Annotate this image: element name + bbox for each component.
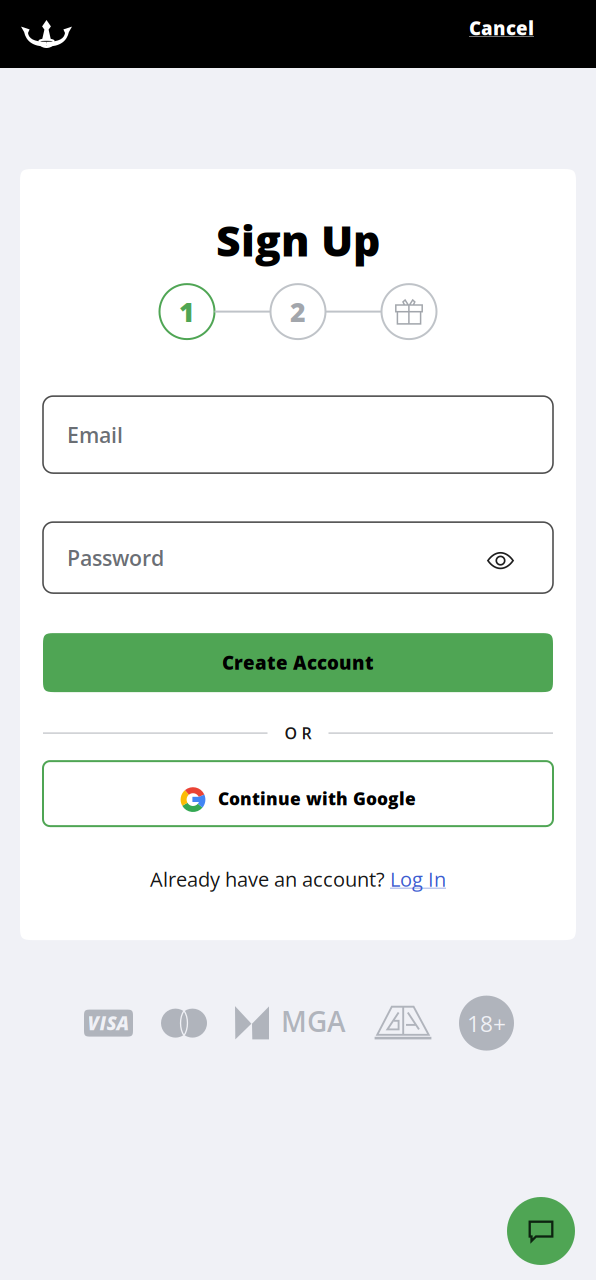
staticText: Sign Up <box>216 211 380 269</box>
button[interactable]: Create Account <box>43 633 553 692</box>
staticText: Log In <box>390 865 446 893</box>
button[interactable]: Password <box>43 522 553 593</box>
staticText: Create Account <box>222 650 374 675</box>
staticText: Password <box>67 543 164 572</box>
staticText: 18+ <box>467 1008 506 1039</box>
staticText: Cancel <box>469 15 534 41</box>
staticText: Already have an account? <box>150 865 385 893</box>
staticText: 2 <box>290 293 306 330</box>
button[interactable]: Cancel <box>469 3 596 65</box>
button[interactable]: Log In <box>390 865 446 893</box>
staticText: Email <box>67 420 123 449</box>
button[interactable]: Chat support <box>507 1197 575 1265</box>
staticText: MGA <box>281 1002 346 1040</box>
staticText: Continue with Google <box>218 787 416 810</box>
button[interactable]: Continue with Google <box>43 761 553 826</box>
staticText: VISA <box>87 1010 129 1036</box>
staticText: 1 <box>179 293 195 330</box>
button[interactable]: Home <box>0 0 72 68</box>
staticText: O R <box>284 722 311 744</box>
button[interactable]: Email <box>43 396 553 473</box>
